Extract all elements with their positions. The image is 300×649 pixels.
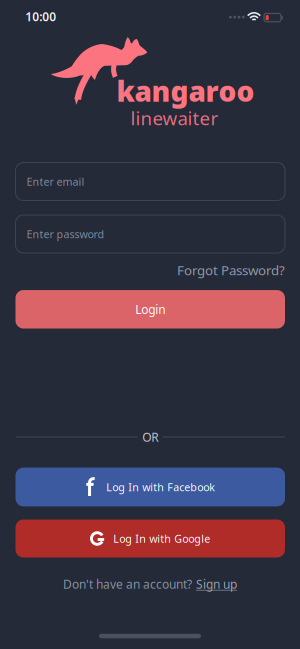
- button[interactable]: Sign up: [196, 576, 237, 592]
- staticText: linewaiter: [130, 106, 218, 130]
- button[interactable]: Forgot Password?: [177, 261, 285, 279]
- staticText: Enter email: [26, 174, 84, 189]
- staticText: Log In with Facebook: [106, 480, 215, 494]
- staticText: Login: [135, 301, 165, 317]
- staticText: 10:00: [25, 9, 56, 25]
- staticText: Enter password: [26, 227, 104, 241]
- staticText: Log In with Google: [113, 531, 210, 546]
- staticText: kangaroo: [116, 72, 254, 110]
- button[interactable]: Log In with Google: [15, 519, 285, 557]
- button[interactable]: Enter email: [15, 162, 285, 200]
- staticText: OR: [142, 429, 158, 445]
- staticText: Forgot Password?: [177, 261, 285, 279]
- button[interactable]: Login: [15, 290, 285, 329]
- staticText: Don't have an account?: [63, 576, 192, 592]
- staticText: Sign up: [196, 576, 237, 592]
- button[interactable]: Enter password: [15, 215, 285, 253]
- button[interactable]: Log In with Facebook: [15, 468, 285, 506]
